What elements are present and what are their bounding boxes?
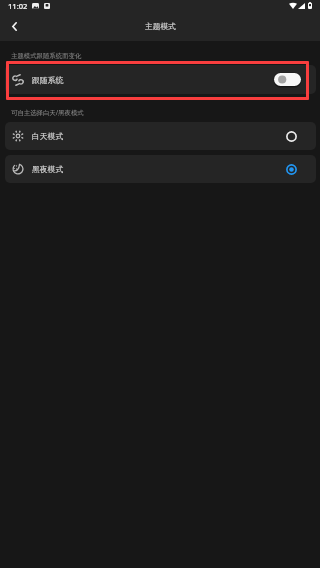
staticText: 主题模式跟随系统而变化 <box>11 52 82 60</box>
button[interactable]: 跟随系统 <box>5 65 316 94</box>
button[interactable]: 白天模式 <box>5 122 316 150</box>
button[interactable]: 选择 <box>284 129 298 143</box>
staticText: 主题模式 <box>145 22 176 32</box>
button[interactable]: 跟随系统开关 <box>273 72 302 87</box>
button[interactable]: 黑夜模式 <box>5 155 316 183</box>
staticText: 跟随系统 <box>32 75 64 85</box>
staticText: 11:02 <box>8 1 28 11</box>
button[interactable]: Back <box>2 14 26 38</box>
staticText: 白天模式 <box>32 131 64 141</box>
staticText: 黑夜模式 <box>32 164 64 174</box>
button[interactable]: 已选择 <box>284 162 298 176</box>
staticText: 可自主选择白天/黑夜模式 <box>11 108 84 117</box>
